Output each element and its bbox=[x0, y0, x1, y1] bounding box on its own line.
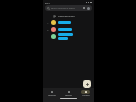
button[interactable]: Search contacts & places bbox=[45, 5, 92, 11]
staticText: Create new contact bbox=[58, 15, 75, 18]
button[interactable]: Recents bbox=[60, 90, 77, 98]
button[interactable]: Create new contact bbox=[43, 13, 94, 19]
staticText: B bbox=[47, 28, 49, 31]
button[interactable]: Favorites bbox=[43, 90, 60, 98]
staticText: Contacts bbox=[82, 94, 90, 96]
staticText: Recents bbox=[65, 94, 72, 96]
button[interactable]: A bbox=[43, 19, 94, 26]
staticText: Search contacts & places bbox=[51, 7, 75, 10]
staticText: Favorites bbox=[48, 94, 56, 96]
button[interactable]: Contacts bbox=[77, 90, 94, 98]
button[interactable]: B bbox=[43, 26, 94, 33]
staticText: 9:41 bbox=[45, 1, 50, 4]
button[interactable] bbox=[43, 33, 94, 40]
staticText: A bbox=[47, 21, 49, 24]
button[interactable]: Add contact bbox=[83, 80, 91, 88]
